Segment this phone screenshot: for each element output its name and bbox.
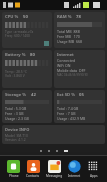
staticText: Ext SD % [57,92,75,98]
staticText: Type : armeabi-v7a [5,30,34,34]
staticText: Usage : 432.9 MB [57,116,86,121]
staticText: Volt : 3.860 V [5,73,25,77]
button[interactable]: Storage % [2,90,52,123]
button[interactable]: Apps [86,159,101,179]
staticText: CPU % [5,14,19,20]
button[interactable]: Battery % [2,50,52,88]
staticText: Messaging [46,174,63,178]
staticText: Free : 3 GB [5,111,24,116]
staticText: Total : 7.4 GB [57,106,79,111]
button[interactable]: RAM % [54,12,105,48]
staticText: RAM % [57,14,72,20]
button[interactable]: Device INFO [2,125,105,144]
staticText: Total : 5.3 GB [5,106,27,111]
staticText: Storage % [5,92,27,98]
staticText: Usage : 2.3 GB [5,116,29,121]
button[interactable]: CPU % [2,12,52,48]
staticText: Total MB 888 [57,29,80,34]
button[interactable]: Ext SD % [54,90,105,123]
staticText: Battery % [5,52,26,58]
button[interactable]: Internet [67,159,82,179]
button[interactable]: Internet [54,50,105,88]
button[interactable]: Contacts [25,159,41,179]
staticText: 05 [79,92,84,98]
staticText: Model SM-T10 [5,133,28,137]
button[interactable]: Phone [6,159,21,179]
staticText: Connected [57,58,76,63]
staticText: MAC 04:46:56:99:90:90 [57,73,88,77]
staticText: WiFi ON [57,63,71,68]
staticText: Apps [90,174,98,178]
staticText: Freq : 600 / 1400 [5,34,30,38]
staticText: Internet [57,52,74,57]
staticText: Device INFO [5,127,30,132]
staticText: Version 4.1.2 [5,137,26,141]
staticText: Mobile data OFF [57,68,86,73]
staticText: Phone [9,174,19,178]
staticText: 80 [30,52,35,58]
staticText: Contacts [26,174,40,178]
staticText: 42 [31,92,36,98]
staticText: Free MB 170 [57,34,80,39]
staticText: Internet [68,174,81,178]
staticText: Temp : 28.5 °C [5,69,28,73]
staticText: Usage MB 668 [57,39,83,44]
staticText: 50 [23,14,28,20]
staticText: 78 [76,14,81,20]
staticText: Free : 7 GB [57,111,76,116]
button[interactable]: Messaging [45,159,64,179]
